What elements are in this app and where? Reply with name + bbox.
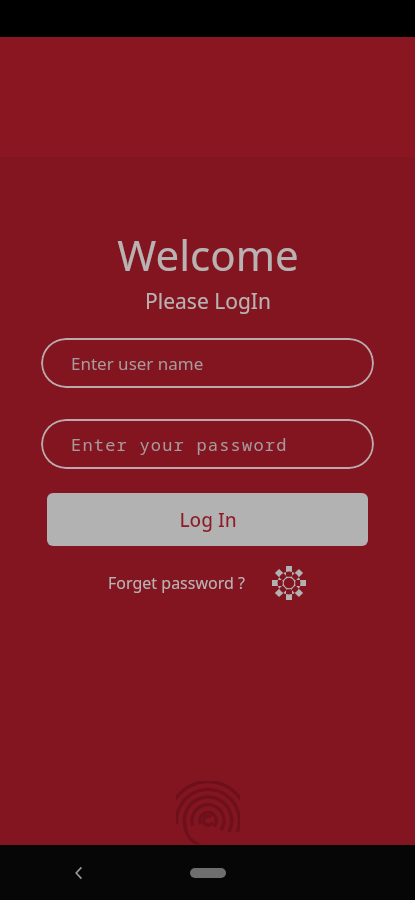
staticText: Log In: [179, 507, 237, 533]
button[interactable]: Home: [182, 856, 234, 890]
button[interactable]: Forget password ?: [106, 568, 247, 598]
staticText: Enter user name: [71, 352, 204, 375]
staticText: Forget password ?: [108, 572, 245, 594]
button[interactable]: Enter user name: [41, 338, 374, 388]
staticText: Enter your password: [71, 433, 288, 456]
button[interactable]: Enter your password: [41, 419, 374, 469]
staticText: Please LogIn: [145, 287, 271, 316]
button[interactable]: Log In: [47, 493, 368, 546]
button[interactable]: Back: [58, 852, 100, 894]
staticText: Welcome: [117, 226, 299, 283]
button[interactable]: Settings: [269, 563, 309, 603]
